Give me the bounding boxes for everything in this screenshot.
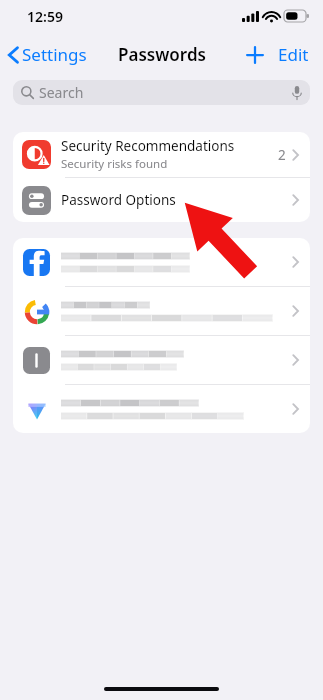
other: Open — [292, 354, 299, 366]
staticText: 2 — [278, 146, 286, 164]
staticText: Password Options — [61, 191, 292, 209]
button[interactable]: Edit — [272, 39, 323, 70]
button[interactable]: Password Options — [13, 178, 310, 222]
other: Open — [292, 305, 299, 317]
button[interactable]: Add password — [238, 41, 272, 69]
other: Open — [292, 149, 299, 161]
button[interactable]: Search — [13, 80, 310, 105]
button[interactable]: Open — [13, 336, 310, 384]
staticText: 12:59 — [27, 7, 63, 26]
staticText: Edit — [278, 43, 309, 66]
staticText: Settings — [22, 43, 87, 66]
other: Voice search — [292, 86, 302, 100]
other: Open — [292, 194, 299, 206]
button[interactable]: Open — [13, 287, 310, 335]
staticText: Search — [39, 83, 84, 102]
button[interactable]: Open — [13, 385, 310, 433]
button[interactable]: Security Recommendations — [13, 132, 310, 177]
other: Open — [292, 403, 299, 415]
staticText: Security risks found — [61, 156, 168, 172]
button[interactable]: Open — [13, 238, 310, 286]
button[interactable]: Settings — [0, 39, 95, 70]
staticText: Passwords — [118, 43, 206, 66]
other: Open — [292, 256, 299, 268]
staticText: Security Recommendations — [61, 137, 235, 155]
